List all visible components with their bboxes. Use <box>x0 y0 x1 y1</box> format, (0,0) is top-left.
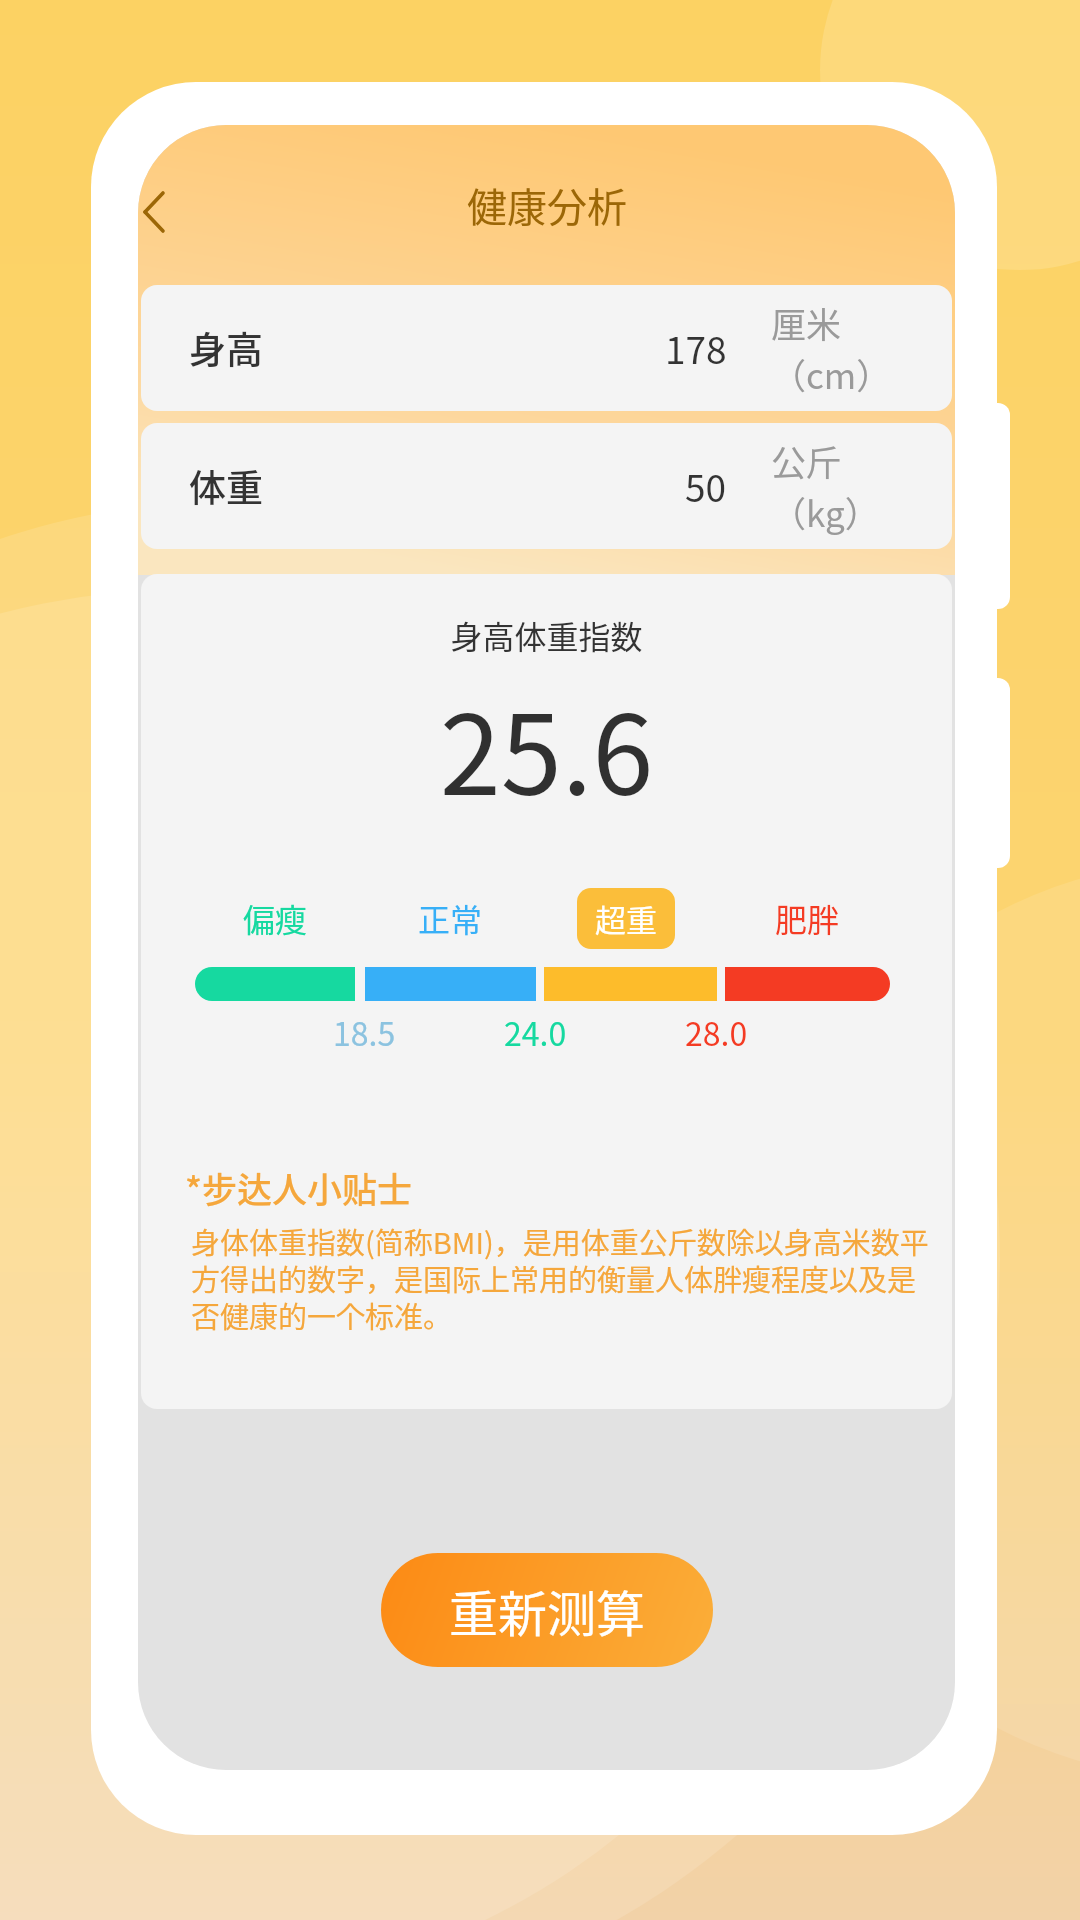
button[interactable]: 体重 <box>141 423 952 549</box>
staticText: 超重 <box>595 896 657 941</box>
staticText: 正常 <box>418 895 483 941</box>
staticText: 25.6 <box>141 667 952 826</box>
staticText: *步达人小贴士 <box>185 1162 412 1213</box>
staticText: 28.0 <box>685 1009 748 1055</box>
staticText: 厘米（cm） <box>771 297 943 399</box>
staticText: 178 <box>665 321 727 375</box>
staticText: 偏瘦 <box>243 895 308 941</box>
staticText: 健康分析 <box>467 176 627 234</box>
staticText: 肥胖 <box>775 895 840 941</box>
staticText: 50 <box>685 459 727 513</box>
staticText: 身高 <box>189 321 263 375</box>
staticText: 24.0 <box>504 1009 567 1055</box>
staticText: 身体体重指数(简称BMI)，是用体重公斤数除以身高米数平方得出的数字，是国际上常… <box>191 1220 940 1336</box>
button[interactable]: 身高 <box>141 285 952 411</box>
staticText: 重新测算 <box>449 1575 646 1646</box>
staticText: 体重 <box>189 459 263 513</box>
button[interactable]: 重新测算 <box>381 1553 713 1667</box>
staticText: 身高体重指数 <box>141 612 952 658</box>
button[interactable]: Back <box>138 167 214 257</box>
staticText: 18.5 <box>333 1009 396 1055</box>
staticText: 公斤（kg） <box>771 435 943 537</box>
